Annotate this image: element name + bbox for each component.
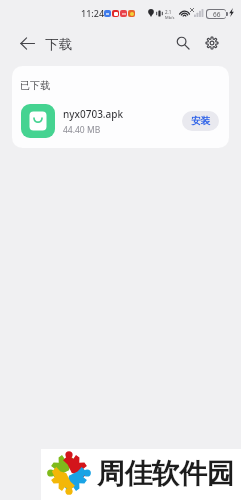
button[interactable]: 安装 — [182, 111, 219, 131]
staticText: 66 — [213, 10, 221, 18]
staticText: 周佳软件园 — [97, 457, 235, 492]
button[interactable]: Back — [13, 29, 41, 57]
staticText: nyx0703.apk — [63, 107, 124, 121]
staticText: 11:24 — [81, 7, 105, 19]
staticText: 已下载 — [20, 79, 50, 92]
button[interactable]: Search — [169, 29, 197, 57]
button[interactable]: Settings — [198, 29, 226, 57]
staticText: 下载 — [45, 36, 72, 53]
staticText: 安装 — [191, 115, 210, 127]
staticText: Mb/s — [165, 15, 175, 20]
staticText: 44.40 MB — [63, 124, 101, 136]
button[interactable]: nyx0703.apk — [12, 99, 229, 143]
staticText: 2.1 — [165, 9, 172, 15]
